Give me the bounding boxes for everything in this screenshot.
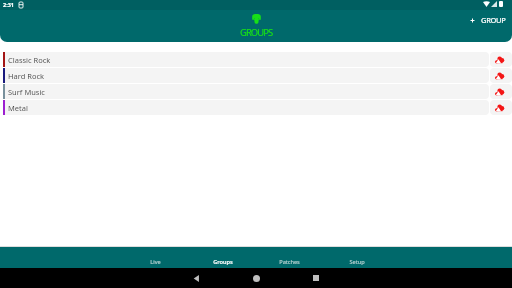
staticText: GROUP (481, 15, 506, 25)
button[interactable]: Home (249, 271, 264, 286)
button[interactable]: Setup (323, 247, 390, 268)
staticText: Live (150, 258, 161, 266)
button[interactable]: Metal (5, 100, 489, 115)
button[interactable]: Patches (256, 247, 323, 268)
button[interactable]: Upload to cloud (490, 100, 512, 115)
button[interactable]: Classic Rock (5, 52, 489, 67)
staticText: Hard Rock (8, 71, 45, 81)
button[interactable]: Live (122, 247, 189, 268)
staticText: Groups (213, 258, 233, 266)
button[interactable]: Upload to cloud (490, 84, 512, 99)
staticText: Metal (8, 103, 28, 113)
staticText: Setup (349, 258, 365, 266)
button[interactable]: Groups (189, 247, 256, 268)
button[interactable]: Back (189, 271, 204, 286)
staticText: Surf Music (8, 87, 45, 97)
button[interactable]: Hard Rock (5, 68, 489, 83)
staticText: Classic Rock (8, 55, 51, 65)
button[interactable]: Upload to cloud (490, 68, 512, 83)
staticText: Patches (279, 258, 300, 266)
button[interactable]: Upload to cloud (490, 52, 512, 67)
button[interactable]: GROUP (463, 12, 512, 28)
button[interactable]: Recents (309, 271, 323, 285)
staticText: 2:31 (3, 1, 14, 8)
button[interactable]: Surf Music (5, 84, 489, 99)
staticText: GROUPS (240, 26, 273, 39)
